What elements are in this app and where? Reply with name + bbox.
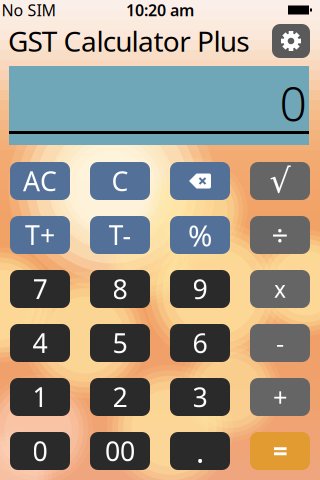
staticText: 0 [32,433,47,469]
staticText: AC [23,163,57,199]
staticText: + [273,380,287,414]
staticText: = [272,433,287,469]
staticText: . [196,431,204,471]
button[interactable]: 1 [10,378,70,416]
button[interactable]: Backspace [170,162,230,200]
staticText: 8 [112,271,127,307]
staticText: T+ [25,217,55,253]
staticText: 1 [32,379,47,415]
staticText: No SIM [1,0,56,21]
button[interactable]: 00 [90,432,150,470]
button[interactable]: 3 [170,378,230,416]
button[interactable]: 8 [90,270,150,308]
staticText: % [188,215,212,254]
staticText: 10:20 am [126,0,194,21]
staticText: 9 [192,271,207,307]
button[interactable]: = [250,432,310,470]
button[interactable]: T- [90,216,150,254]
staticText: 00 [105,433,135,469]
staticText: 3 [192,379,207,415]
button[interactable]: √ [250,162,310,200]
staticText: T- [108,217,131,253]
button[interactable]: 5 [90,324,150,362]
staticText: 5 [112,325,127,361]
button[interactable]: T+ [10,216,70,254]
staticText: ÷ [271,215,288,254]
staticText: - [276,326,284,360]
staticText: 7 [32,271,47,307]
button[interactable]: x [250,270,310,308]
button[interactable]: Settings [272,24,310,58]
staticText: GST Calculator Plus [8,22,249,60]
button[interactable]: C [90,162,150,200]
button[interactable]: - [250,324,310,362]
staticText: 4 [32,325,47,361]
button[interactable]: AC [10,162,70,200]
staticText: 2 [112,379,127,415]
staticText: x [274,274,286,304]
button[interactable]: 6 [170,324,230,362]
button[interactable]: 9 [170,270,230,308]
staticText: 0 [279,71,306,135]
button[interactable]: 2 [90,378,150,416]
button[interactable]: 7 [10,270,70,308]
staticText: 6 [192,325,207,361]
button[interactable]: 4 [10,324,70,362]
button[interactable]: % [170,216,230,254]
button[interactable]: . [170,432,230,470]
button[interactable]: + [250,378,310,416]
button[interactable]: 0 [10,432,70,470]
staticText: C [111,163,128,199]
staticText: √ [269,162,290,200]
button[interactable]: ÷ [250,216,310,254]
